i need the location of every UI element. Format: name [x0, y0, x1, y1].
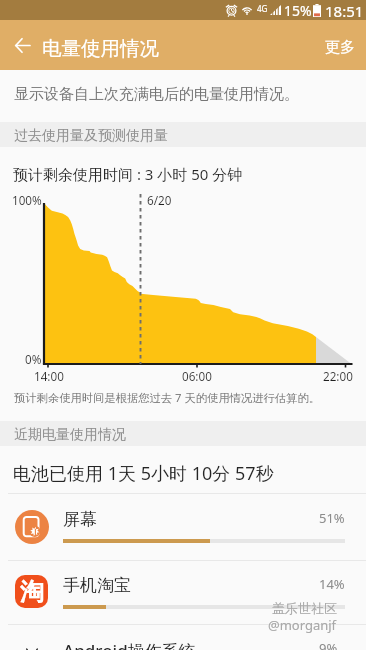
button[interactable]: Back — [0, 23, 44, 67]
staticText: 18:51 — [325, 1, 364, 21]
staticText: 6/20 — [147, 192, 172, 208]
staticText: 屏幕 — [63, 509, 97, 530]
staticText: 22:00 — [323, 368, 353, 384]
staticText: 14:00 — [34, 368, 64, 384]
staticText: 51% — [319, 509, 345, 527]
staticText: 9% — [319, 639, 338, 650]
staticText: 4G — [257, 3, 268, 14]
staticText: 电量使用情况 — [42, 36, 159, 61]
staticText: 手机淘宝 — [63, 575, 131, 596]
staticText: 电池已使用 1天 5小时 10分 57秒 — [13, 461, 274, 486]
staticText: 更多 — [325, 38, 355, 57]
button[interactable]: 屏幕 — [0, 494, 366, 560]
staticText: 0% — [25, 351, 42, 367]
staticText: 淘 — [20, 577, 44, 607]
staticText: 盖乐世社区 — [272, 600, 337, 616]
staticText: 过去使用量及预测使用量 — [14, 127, 168, 145]
staticText: Android操作系统 — [63, 639, 196, 650]
staticText: 显示设备自上次充满电后的电量使用情况。 — [14, 85, 299, 104]
staticText: @morganjf — [268, 616, 337, 634]
button[interactable]: Android操作系统 — [0, 624, 366, 650]
staticText: 15% — [284, 1, 312, 20]
staticText: 预计剩余使用时间是根据您过去 7 天的使用情况进行估算的。 — [14, 390, 321, 405]
staticText: 近期电量使用情况 — [14, 426, 126, 444]
staticText: 预计剩余使用时间 : 3 小时 50 分钟 — [13, 164, 243, 184]
staticText: 14% — [319, 575, 345, 593]
button[interactable]: 更多 — [313, 25, 366, 66]
staticText: 06:00 — [182, 368, 212, 384]
staticText: 100% — [12, 192, 42, 208]
button[interactable]: 淘 — [0, 560, 366, 624]
